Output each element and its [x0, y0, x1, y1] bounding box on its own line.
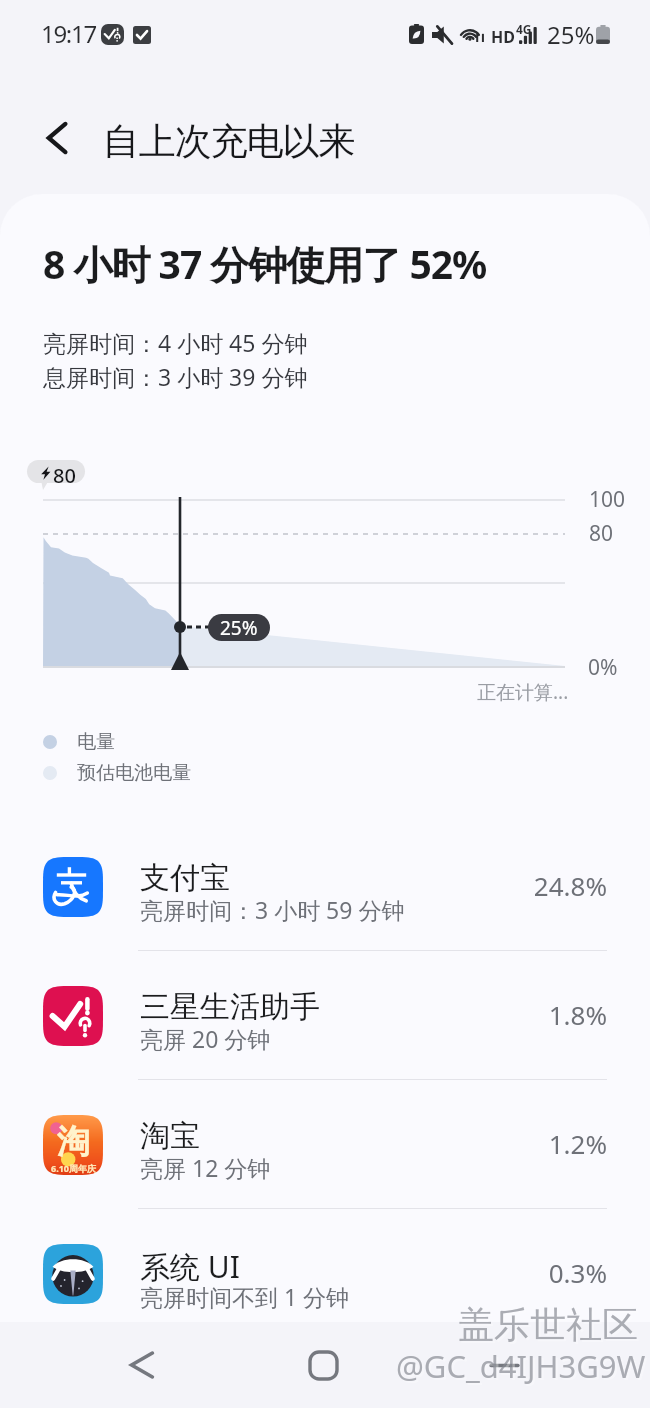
staticText: 4G	[516, 21, 532, 37]
button[interactable]: Home	[283, 1325, 363, 1405]
staticText: 100	[589, 485, 626, 514]
staticText: 系统 UI	[140, 1246, 240, 1287]
staticText: 25%	[220, 615, 258, 641]
button[interactable]: Back	[28, 110, 84, 166]
staticText: 亮屏时间：3 小时 59 分钟	[140, 894, 405, 925]
staticText: 自上次充电以来	[103, 118, 355, 165]
staticText: 正在计算...	[477, 679, 569, 705]
staticText: 电量	[77, 730, 115, 754]
staticText: 24.8%	[430, 868, 607, 903]
staticText: 1.2%	[430, 1126, 607, 1161]
button[interactable]: 支付宝	[0, 822, 650, 951]
staticText: 80	[53, 462, 76, 489]
staticText: 息屏时间：3 小时 39 分钟	[43, 361, 308, 392]
staticText: 19:17	[41, 17, 96, 50]
staticText: 三星生活助手	[140, 988, 320, 1026]
staticText: 1.8%	[430, 997, 607, 1032]
staticText: 80	[589, 519, 614, 548]
staticText: 25%	[547, 18, 595, 51]
button[interactable]: Recents	[464, 1325, 544, 1405]
staticText: 亮屏 20 分钟	[140, 1023, 271, 1054]
button[interactable]: 三星生活助手	[0, 951, 650, 1080]
staticText: 盖乐世社区	[460, 1304, 640, 1349]
staticText: 盖乐世社区	[458, 1302, 638, 1347]
staticText: @GC_d4IJH3G9W	[398, 1347, 648, 1389]
staticText: 淘	[57, 1121, 90, 1163]
staticText: @GC_d4IJH3G9W	[396, 1345, 646, 1387]
staticText: HD	[491, 26, 515, 48]
staticText: 预估电池电量	[77, 761, 191, 785]
button[interactable]: 淘	[0, 1080, 650, 1209]
staticText: 亮屏时间：4 小时 45 分钟	[43, 327, 308, 358]
button[interactable]: Back	[102, 1325, 182, 1405]
staticText: 6.10周年庆	[51, 1162, 96, 1174]
staticText: 支付宝	[140, 859, 230, 897]
staticText: 8 小时 37 分钟使用了 52%	[43, 237, 487, 290]
staticText: 亮屏时间不到 1 分钟	[140, 1281, 350, 1312]
staticText: 亮屏 12 分钟	[140, 1152, 271, 1183]
button[interactable]: 系统 UI	[0, 1209, 650, 1338]
staticText: 0.3%	[430, 1255, 607, 1290]
staticText: 0%	[588, 653, 618, 682]
staticText: 淘宝	[140, 1117, 200, 1155]
